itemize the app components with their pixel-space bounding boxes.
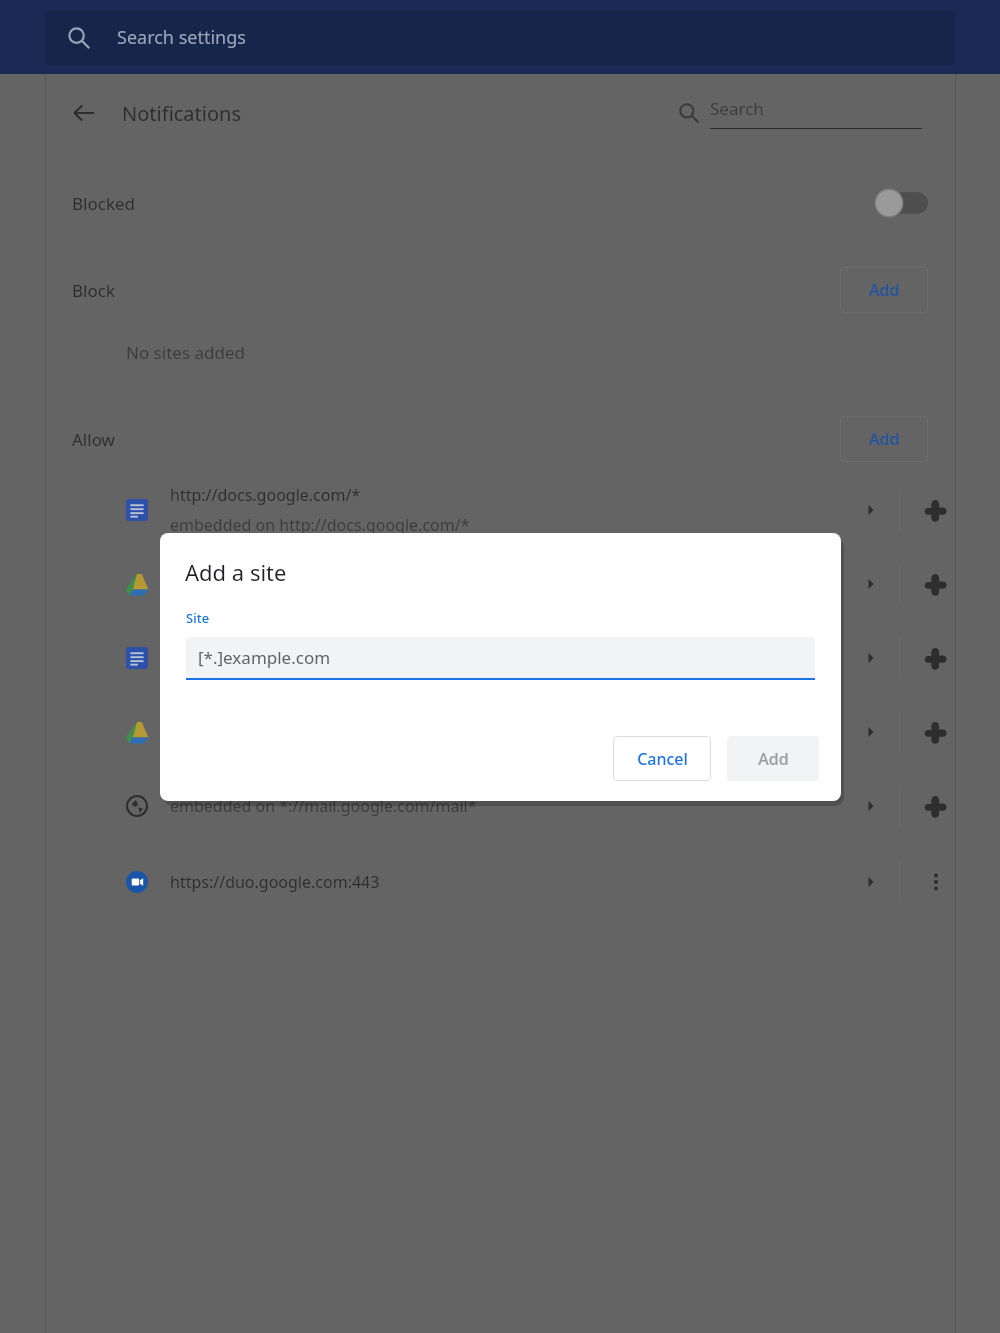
staticText: Add a site xyxy=(185,557,287,587)
button[interactable] xyxy=(874,188,928,218)
button[interactable]: Extension xyxy=(900,630,972,686)
button[interactable]: Extension xyxy=(0,626,1000,690)
button[interactable]: More options xyxy=(900,854,972,910)
button[interactable]: Extension xyxy=(900,556,972,612)
button[interactable]: Extension xyxy=(0,700,1000,764)
staticText: Search settings xyxy=(117,25,246,50)
staticText: embedded on *://mail.google.com/mail* xyxy=(170,795,477,817)
button[interactable]: http://docs.google.com/* xyxy=(0,478,1000,542)
button[interactable]: Search settings xyxy=(45,10,955,65)
staticText: No sites added xyxy=(126,341,245,364)
staticText: embedded on http://docs.google.com/* xyxy=(170,514,470,536)
button[interactable]: Cancel xyxy=(613,736,711,781)
staticText: [*.]example.com xyxy=(198,646,331,669)
staticText: Add xyxy=(869,279,900,301)
button[interactable]: Extension xyxy=(0,552,1000,616)
staticText: Blocked xyxy=(72,192,136,215)
staticText: http://docs.google.com/* xyxy=(170,484,361,506)
button[interactable]: Add xyxy=(840,267,928,313)
button[interactable]: Extension xyxy=(900,482,972,538)
button[interactable]: Add xyxy=(840,416,928,462)
button[interactable]: [*.]example.com xyxy=(186,637,815,678)
staticText: Add xyxy=(758,748,789,770)
staticText: Notifications xyxy=(122,100,241,127)
button[interactable]: Blocked xyxy=(72,178,928,228)
button[interactable]: Add xyxy=(727,736,819,781)
staticText: https://duo.google.com:443 xyxy=(170,871,380,893)
button[interactable]: Extension xyxy=(900,704,972,760)
button[interactable]: Back xyxy=(62,91,106,135)
button[interactable]: https://duo.google.com:443 xyxy=(0,850,1000,914)
staticText: Cancel xyxy=(637,748,688,770)
button[interactable]: embedded on *://mail.google.com/mail* xyxy=(0,774,1000,838)
staticText: Allow xyxy=(72,428,115,451)
staticText: Block xyxy=(72,279,115,302)
staticText: Site xyxy=(186,609,210,627)
button[interactable]: Extension xyxy=(900,778,972,834)
staticText: Search xyxy=(710,97,764,120)
staticText: Add xyxy=(869,428,900,450)
